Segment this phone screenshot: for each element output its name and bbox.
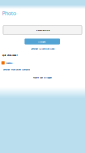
staticText: afficher la version Web [31, 47, 54, 50]
staticText: afficher la version Web [31, 47, 54, 50]
staticText: Qui êtes-vous ? [2, 53, 18, 56]
staticText: Sophie [6, 61, 12, 64]
staticText: Photo [2, 9, 16, 17]
staticText: Accueil [38, 40, 46, 43]
staticText: Accueil [38, 40, 46, 43]
button[interactable]: Accueil [24, 38, 60, 44]
staticText: Fourni par [33, 76, 43, 79]
button[interactable]: afficher la version Web [0, 47, 85, 50]
staticText: Sophie [6, 61, 12, 64]
button[interactable]: afficher mon profil complet [3, 68, 30, 71]
staticText: Aucun article [35, 28, 49, 32]
button[interactable]: Sophie [1, 61, 12, 64]
staticText: Qui êtes-vous ? [2, 53, 18, 56]
button[interactable]: Blogger [44, 76, 52, 79]
staticText: Blogger [44, 76, 52, 79]
staticText: afficher mon profil complet [3, 68, 30, 71]
staticText: Blogger [44, 76, 52, 79]
staticText: Aucun article [35, 28, 49, 32]
staticText: afficher mon profil complet [3, 68, 30, 71]
staticText: Fourni par [33, 76, 43, 79]
